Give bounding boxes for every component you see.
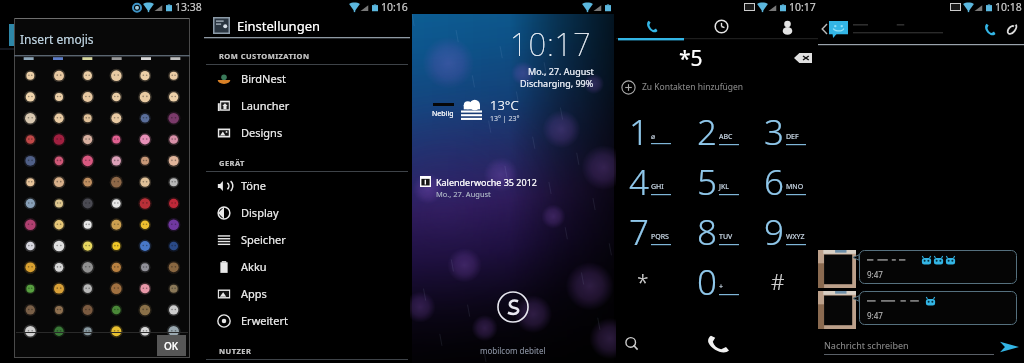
staticText: Nachricht schreiben [824,339,909,351]
staticText: # [771,268,785,297]
staticText: Kalenderwoche 35 2012 [436,176,537,188]
staticText: Designs [241,125,283,140]
button[interactable]: Contacts [756,14,818,38]
staticText: Erweitert [241,313,289,328]
staticText: + [719,282,724,292]
button[interactable]: Send [994,333,1024,361]
button[interactable]: Recents [686,14,756,38]
staticText: Mo., 27. August [528,65,594,77]
staticText: Apps [241,286,267,301]
staticText: 13° | 23° [490,114,520,124]
staticText: Töne [241,178,267,193]
button[interactable]: * [616,257,684,307]
staticText: ⌀ [651,133,656,141]
staticText: 10:18 [995,0,1022,14]
staticText: 1 [629,108,649,156]
staticText: Speicher [241,232,286,247]
button[interactable]: Erweitert [206,307,410,334]
staticText: 7 [629,208,649,256]
button[interactable]: Akku [206,253,410,280]
staticText: 9:47 [867,310,883,321]
staticText: OK [164,339,179,353]
staticText: Einstellungen [237,17,321,35]
button[interactable]: Call [978,18,1000,40]
button[interactable]: 4 [616,157,684,207]
button[interactable]: Designs [206,119,410,146]
staticText: WXYZ [786,232,805,242]
staticText: 10:16 [381,0,408,14]
staticText: 9:47 [867,269,883,280]
staticText: 13:38 [175,0,202,14]
staticText: 4 [629,158,649,206]
staticText: 2 [697,108,717,156]
button[interactable]: Speicher [206,226,410,253]
staticText: Neblig [432,109,454,119]
button[interactable]: 7 [616,207,684,257]
staticText: Mo., 27. August [436,189,491,199]
staticText: ROM CUSTOMIZATION [219,51,310,61]
staticText: 3 [764,108,784,156]
button[interactable]: Search [624,336,640,352]
staticText: 8 [697,208,717,256]
button[interactable]: 5 [684,157,751,207]
button[interactable]: Apps [206,280,410,307]
staticText: 10:17 [510,23,592,65]
staticText: Akku [241,259,267,274]
staticText: NUTZER [219,346,252,356]
staticText: Launcher [241,98,290,113]
button[interactable]: Delete [794,53,812,63]
staticText: BirdNest [241,71,286,86]
button[interactable]: Dialer [616,14,686,38]
button[interactable]: Töne [206,172,410,199]
button[interactable]: Einstellungen [206,14,410,37]
button[interactable]: 2 [684,107,751,157]
staticText: GHI [651,182,664,192]
staticText: 9 [764,208,784,256]
staticText: GERÄT [219,158,245,168]
staticText: 5 [697,158,717,206]
staticText: 13°C [490,96,519,114]
staticText: Zu Kontakten hinzufügen [642,81,744,93]
button[interactable]: 9 [751,207,818,257]
staticText: ABC [719,132,733,142]
staticText: *5 [679,44,703,73]
staticText: TUV [719,232,733,242]
staticText: MNO [786,182,804,192]
button[interactable]: 6 [751,157,818,207]
staticText: Discharging, 99% [520,77,594,89]
staticText: PQRS [651,232,669,242]
staticText: JKL [719,182,729,192]
staticText: mobilcom debitel [480,345,546,356]
button[interactable]: Call [702,333,732,355]
button[interactable]: Zu Kontakten hinzufügen [616,75,818,99]
staticText: DEF [786,132,799,142]
button[interactable]: BirdNest [206,65,410,92]
button[interactable]: OK [157,335,186,356]
staticText: Display [241,205,279,220]
staticText: 10:17 [789,0,816,14]
button[interactable]: 3 [751,107,818,157]
button[interactable]: 8 [684,207,751,257]
button[interactable]: Attach [1000,18,1022,40]
button[interactable]: Display [206,199,410,226]
staticText: 6 [764,158,784,206]
button[interactable]: Launcher [206,92,410,119]
staticText: * [637,268,649,297]
staticText: Insert emojis [20,31,94,47]
staticText: 0 [697,258,717,306]
button[interactable]: 0 [684,257,751,307]
button[interactable]: # [751,257,818,307]
button[interactable]: 1 [616,107,684,157]
